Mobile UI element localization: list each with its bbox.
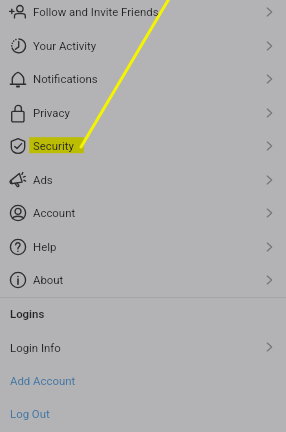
- button[interactable]: Log Out: [0, 397, 286, 429]
- button[interactable]: Ads: [0, 163, 286, 197]
- staticText: Follow and Invite Friends: [33, 5, 159, 18]
- staticText: Ads: [33, 173, 53, 186]
- button[interactable]: Login Info: [0, 331, 286, 363]
- button[interactable]: About: [0, 263, 286, 297]
- staticText: Login Info: [10, 341, 61, 354]
- staticText: Privacy: [33, 106, 70, 119]
- staticText: Help: [33, 240, 57, 253]
- button[interactable]: Help: [0, 230, 286, 264]
- staticText: Account: [33, 206, 76, 219]
- button[interactable]: Security: [0, 129, 286, 163]
- button[interactable]: Account: [0, 196, 286, 230]
- staticText: About: [33, 273, 64, 286]
- button[interactable]: Add Account: [0, 364, 286, 396]
- staticText: Logins: [10, 307, 45, 320]
- staticText: Security: [33, 139, 74, 152]
- staticText: Add Account: [10, 374, 76, 387]
- button[interactable]: Your Activity: [0, 29, 286, 63]
- staticText: Notifications: [33, 72, 98, 85]
- button[interactable]: Privacy: [0, 96, 286, 130]
- button[interactable]: Notifications: [0, 62, 286, 96]
- staticText: Your Activity: [33, 39, 97, 52]
- button[interactable]: Follow and Invite Friends: [0, 0, 286, 29]
- staticText: Log Out: [10, 407, 50, 420]
